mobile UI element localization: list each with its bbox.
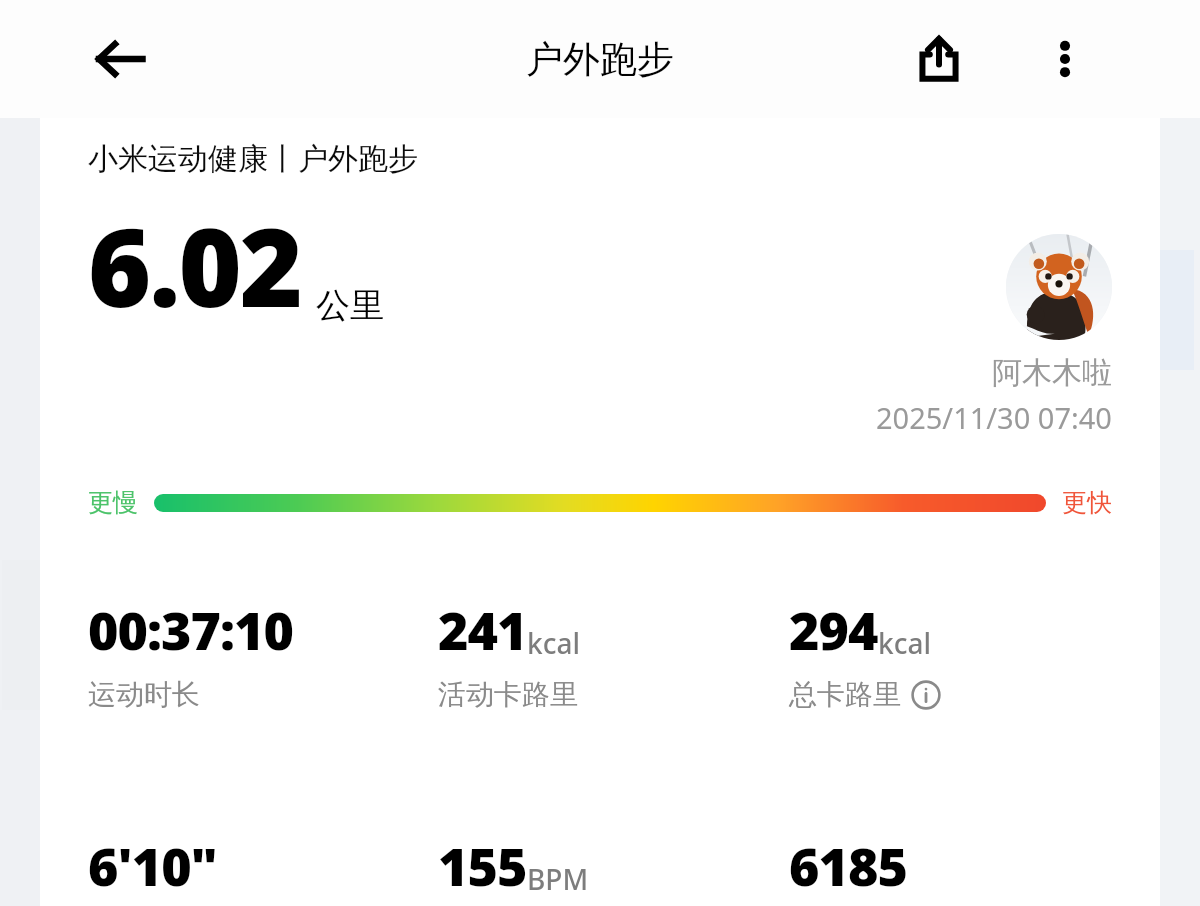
staticText: kcal — [527, 624, 580, 662]
staticText: 户外跑步 — [526, 36, 674, 83]
button[interactable]: 00:37:10 — [88, 594, 438, 712]
staticText: 294 — [789, 594, 878, 665]
button[interactable]: 6185 — [789, 830, 1140, 906]
button[interactable]: More options — [1026, 20, 1104, 98]
staticText: 00:37:10 — [88, 594, 293, 665]
staticText: 2025/11/30 07:40 — [876, 398, 1112, 437]
staticText: BPM — [527, 860, 589, 898]
staticText: 241 — [438, 594, 527, 665]
staticText: 更快 — [1062, 487, 1112, 518]
button[interactable]: User avatar — [1006, 234, 1112, 340]
staticText: 运动时长 — [88, 677, 200, 712]
staticText: 更慢 — [88, 487, 138, 518]
button[interactable]: 155 — [438, 830, 789, 906]
staticText: 公里 — [316, 284, 384, 327]
button[interactable]: 6'10" — [88, 830, 438, 906]
button[interactable]: Back — [82, 21, 158, 97]
staticText: 6.02 — [88, 192, 302, 339]
staticText: 6185 — [789, 830, 907, 901]
button[interactable]: Share — [900, 20, 978, 98]
staticText: 总卡路里 — [789, 677, 901, 712]
staticText: 155 — [438, 830, 527, 901]
button[interactable]: 241 — [438, 594, 789, 712]
staticText: 6'10" — [88, 830, 217, 901]
button[interactable]: 294 — [789, 594, 1140, 712]
staticText: 小米运动健康丨户外跑步 — [88, 140, 418, 178]
staticText: 活动卡路里 — [438, 677, 578, 712]
staticText: kcal — [878, 624, 931, 662]
staticText: 阿木木啦 — [992, 354, 1112, 392]
